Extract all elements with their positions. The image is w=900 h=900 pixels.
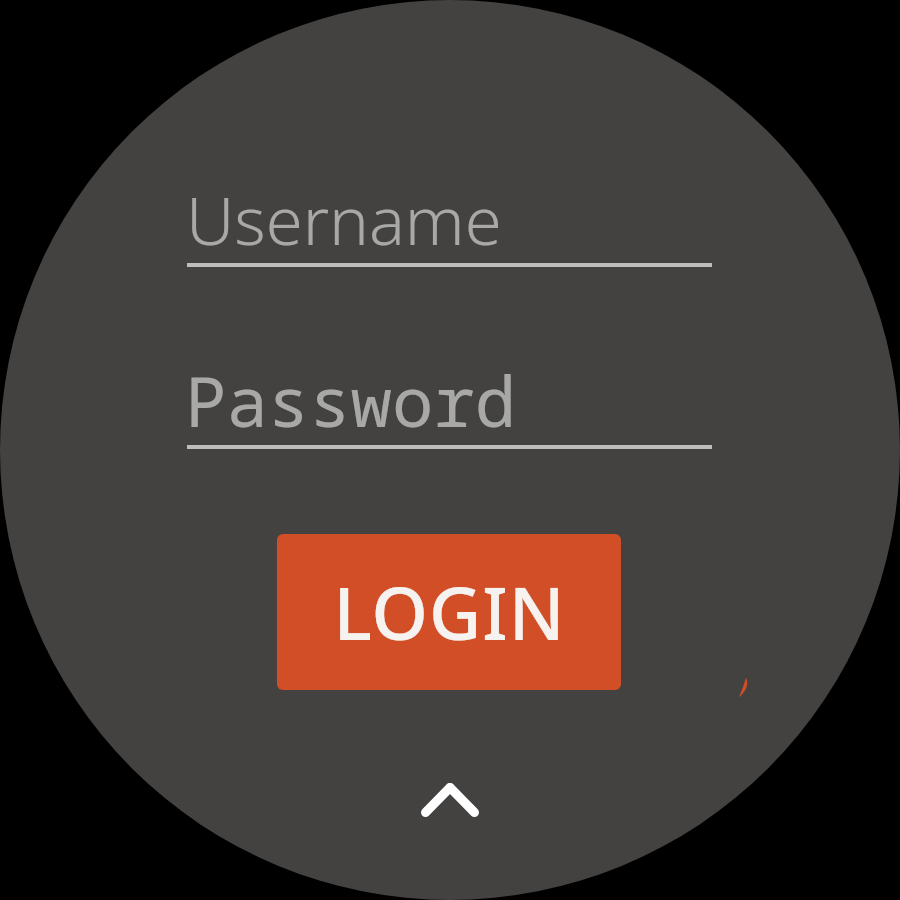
button[interactable]: Username field xyxy=(187,175,712,267)
button[interactable]: Password field xyxy=(187,357,712,449)
button[interactable]: Scroll up xyxy=(400,762,500,838)
staticText: Username xyxy=(186,173,502,264)
staticText: LOGIN xyxy=(333,563,566,661)
staticText: Password xyxy=(185,353,517,447)
button[interactable]: LOGIN xyxy=(277,534,621,690)
